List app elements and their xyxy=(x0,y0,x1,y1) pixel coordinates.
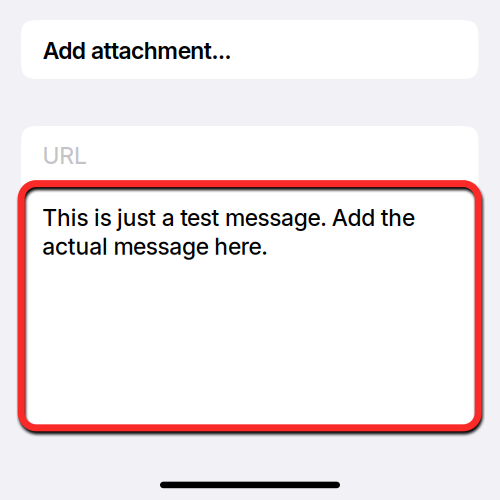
button[interactable]: This is just a test message. Add the act… xyxy=(18,180,482,431)
button[interactable]: URL xyxy=(21,126,478,185)
button[interactable]: Add attachment... xyxy=(21,20,478,79)
staticText: URL xyxy=(43,141,87,169)
staticText: This is just a test message. Add the act… xyxy=(42,204,415,260)
staticText: Add attachment... xyxy=(43,36,231,64)
